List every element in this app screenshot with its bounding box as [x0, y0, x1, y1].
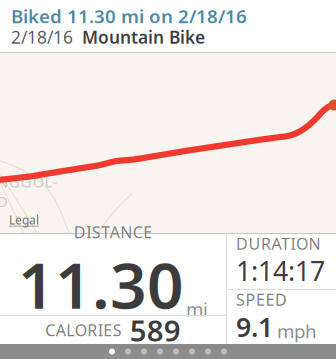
staticText: 1:14:17	[236, 253, 325, 288]
staticText: DISTANCE	[74, 221, 152, 243]
staticText: mph	[277, 319, 317, 343]
staticText: Biked 11.30 mi on 2/18/16	[11, 4, 247, 28]
staticText: mi	[186, 297, 208, 321]
staticText: 589	[130, 310, 181, 349]
staticText: 9.1	[236, 309, 273, 344]
staticText: CALORIES	[45, 319, 122, 341]
staticText: Legal	[9, 212, 39, 228]
staticText: 2/18/16	[11, 25, 73, 48]
staticText: DURATION	[236, 233, 320, 254]
staticText: NGGOLD	[0, 172, 64, 191]
staticText: 11.30	[18, 241, 184, 326]
staticText: SPEED	[236, 289, 287, 310]
staticText: Mountain Bike	[82, 25, 205, 48]
button[interactable]: Biked 11.30 mi on 2/18/16	[0, 0, 336, 52]
